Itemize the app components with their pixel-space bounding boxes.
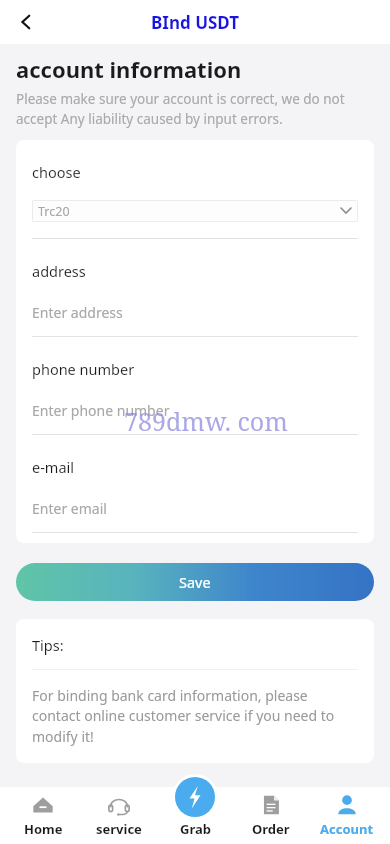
staticText: Tips: [32,635,64,655]
staticText: BInd USDT [151,11,240,34]
staticText: address [32,261,86,281]
button[interactable]: Back [8,4,44,40]
button[interactable]: Grab [162,774,228,844]
staticText: e-mail [32,457,75,477]
button[interactable]: Enter address [32,303,358,322]
button[interactable]: Save [16,563,374,601]
staticText: Grab [180,820,211,838]
button[interactable]: Account [314,789,380,842]
staticText: service [96,820,142,838]
button[interactable]: Enter email [32,499,358,518]
staticText: Enter email [32,499,107,518]
staticText: Account [320,820,374,838]
staticText: Order [252,820,290,838]
staticText: Trc20 [38,203,70,220]
staticText: phone number [32,359,135,379]
staticText: Home [24,820,63,838]
staticText: Save [179,572,211,592]
button[interactable]: service [86,789,152,842]
button[interactable]: Enter phone number [32,401,358,420]
button[interactable]: Order [238,789,304,842]
button[interactable]: Home [10,789,76,842]
button[interactable]: Trc20 [32,200,358,222]
staticText: account information [16,54,242,84]
staticText: Enter address [32,303,123,322]
staticText: Please make sure your account is correct… [16,90,345,128]
staticText: choose [32,162,81,182]
staticText: Enter phone number [32,401,170,420]
staticText: 789dmw. com [124,404,288,438]
staticText: For binding bank card information, pleas… [32,686,335,747]
